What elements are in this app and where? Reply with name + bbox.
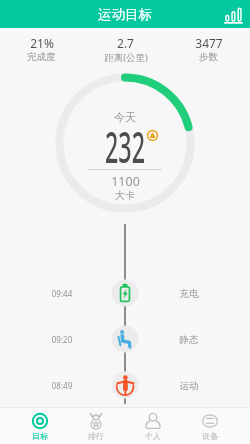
staticText: 充电 xyxy=(173,288,205,300)
staticText: 目标 xyxy=(32,431,48,441)
staticText: 运动 xyxy=(173,380,205,392)
staticText: 大卡 xyxy=(115,189,135,202)
staticText: 排行 xyxy=(88,431,104,441)
button[interactable]: Statistics xyxy=(224,4,244,24)
staticText: 完成度 xyxy=(27,51,56,63)
staticText: 09:20 xyxy=(46,334,78,345)
staticText: 运动目标 xyxy=(98,6,152,23)
button[interactable]: 目标 xyxy=(12,408,68,444)
button[interactable]: 21% xyxy=(0,29,83,67)
staticText: 232 xyxy=(105,117,145,176)
staticText: 步数 xyxy=(199,51,218,63)
button[interactable]: 排行 xyxy=(68,408,124,444)
button[interactable]: 09:20 xyxy=(0,326,250,353)
staticText: 设备 xyxy=(202,431,218,441)
staticText: 21% xyxy=(30,35,54,51)
staticText: 今天 xyxy=(114,110,136,124)
staticText: 个人 xyxy=(145,431,161,441)
staticText: 09:44 xyxy=(46,288,78,299)
staticText: 3477 xyxy=(195,35,223,51)
staticText: 静态 xyxy=(173,334,205,346)
button[interactable]: 09:44 xyxy=(0,280,250,307)
button[interactable]: 08:49 xyxy=(0,372,250,399)
button[interactable]: 个人 xyxy=(124,408,181,444)
staticText: 距离(公里) xyxy=(104,51,148,64)
staticText: 1100 xyxy=(111,173,140,190)
button[interactable]: 3477 xyxy=(167,29,250,67)
button[interactable]: 设备 xyxy=(181,408,238,444)
button[interactable]: 2.7 xyxy=(84,29,167,67)
staticText: 08:49 xyxy=(46,380,78,391)
staticText: 2.7 xyxy=(117,35,134,51)
